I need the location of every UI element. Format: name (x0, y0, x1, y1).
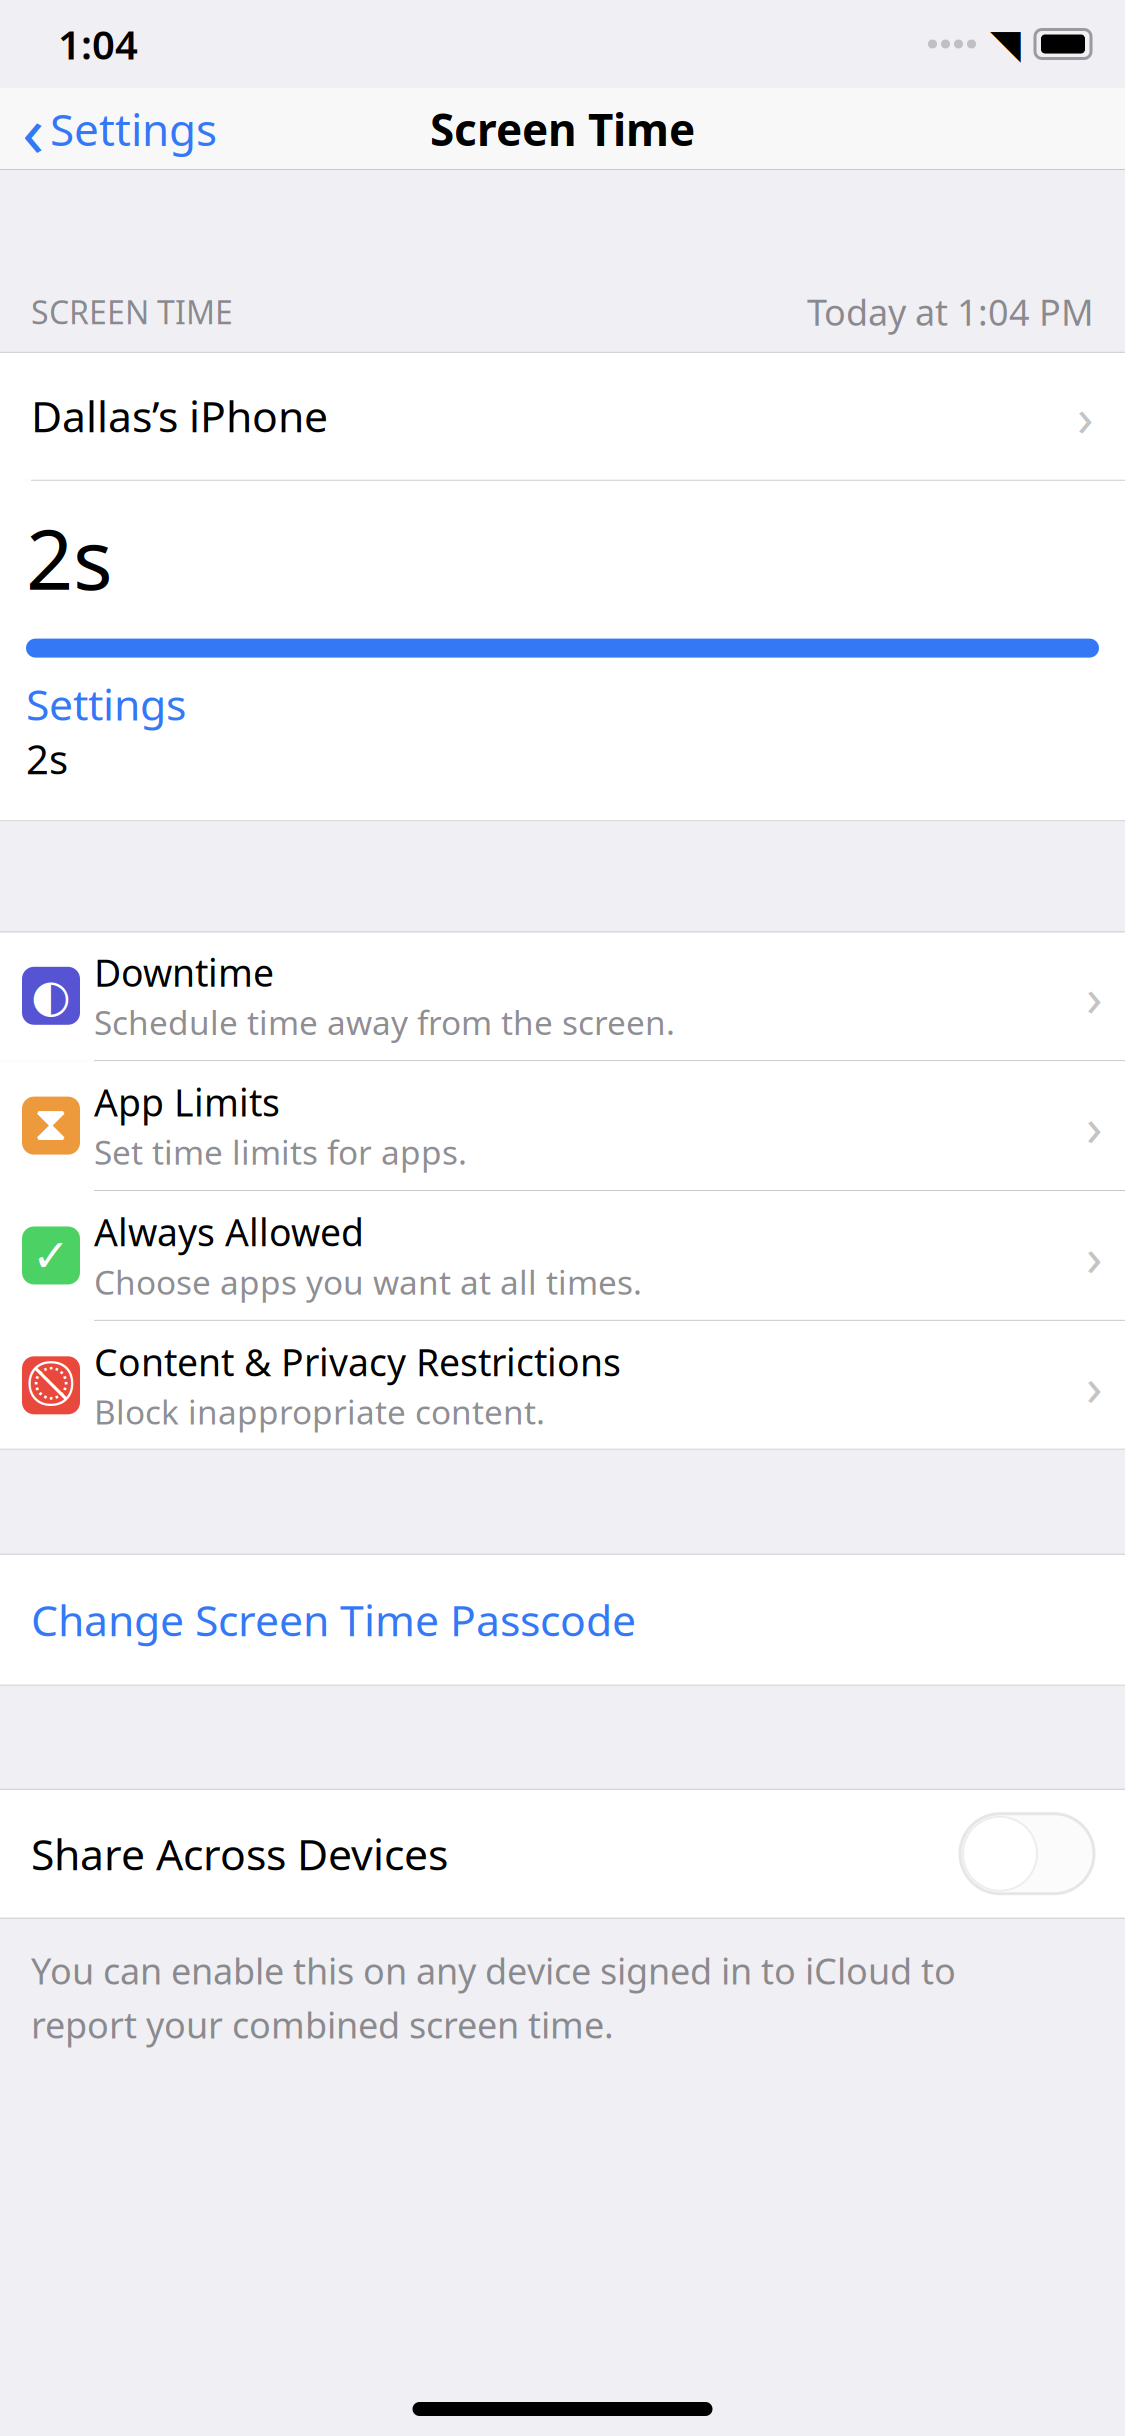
staticText: Always Allowed (94, 1207, 364, 1257)
staticText: Downtime (94, 947, 274, 997)
staticText: Content & Privacy Restrictions (94, 1337, 621, 1386)
button[interactable]: ✓ (0, 1191, 1125, 1320)
button[interactable]: ◐ (0, 931, 1125, 1060)
staticText: Change Screen Time Passcode (31, 1591, 636, 1648)
staticText: Screen Time (430, 100, 695, 158)
button[interactable]: Change Screen Time Passcode (0, 1554, 1125, 1686)
button[interactable]: Dallas’s iPhone (0, 352, 1125, 480)
staticText: › (1086, 1350, 1103, 1421)
button[interactable]: ⧗ (0, 1061, 1125, 1190)
staticText: Schedule time away from the screen. (94, 1000, 675, 1044)
staticText: ‹ (22, 81, 44, 177)
staticText: Share Across Devices (31, 1825, 448, 1882)
staticText: App Limits (94, 1077, 280, 1127)
staticText: Dallas’s iPhone (31, 387, 328, 444)
staticText: ◥ (990, 21, 1021, 67)
staticText: You can enable this on any device signed… (31, 1947, 956, 1994)
staticText: Block inappropriate content. (94, 1389, 545, 1434)
staticText: Settings (26, 676, 186, 732)
staticText: ⧗ (34, 1102, 68, 1149)
button[interactable]: ⃠ (0, 1321, 1125, 1450)
staticText: Choose apps you want at all times. (94, 1260, 642, 1304)
staticText: 2s (26, 732, 68, 785)
staticText: › (1086, 1090, 1103, 1161)
staticText: Settings (50, 100, 217, 158)
staticText: ✓ (32, 1230, 70, 1281)
staticText: › (1077, 380, 1094, 451)
staticText: Set time limits for apps. (94, 1130, 467, 1174)
staticText: 2s (26, 503, 113, 613)
staticText: SCREEN TIME (31, 291, 233, 333)
staticText: › (1086, 1220, 1103, 1291)
button[interactable]: ‹ (0, 73, 217, 185)
staticText: 1:04 (58, 17, 138, 70)
button[interactable]: Share Across Devices (0, 1789, 1125, 1919)
staticText: Today at 1:04 PM (807, 288, 1094, 336)
staticText: report your combined screen time. (31, 2000, 614, 2048)
staticText: › (1086, 960, 1103, 1031)
staticText: ⃠ (33, 1363, 69, 1407)
staticText: ◐ (31, 970, 71, 1022)
